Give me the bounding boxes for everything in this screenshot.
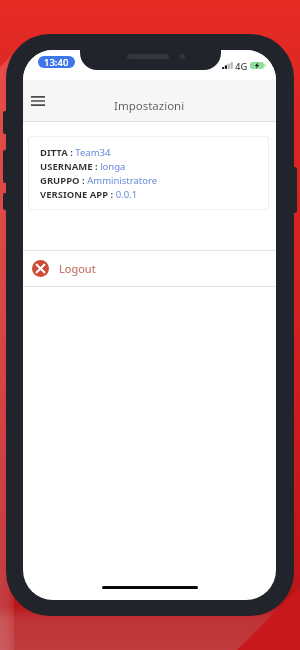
button[interactable]: Logout bbox=[23, 251, 276, 286]
staticText: Logout bbox=[59, 261, 96, 276]
staticText: 4G bbox=[235, 60, 248, 73]
staticText: Impostazioni bbox=[114, 98, 185, 114]
button[interactable]: Menu bbox=[24, 89, 52, 113]
staticText: 13:40 bbox=[44, 56, 69, 68]
staticText: USERNAME : longa bbox=[40, 160, 126, 173]
staticText: GRUPPO : Amministratore bbox=[40, 174, 158, 187]
staticText: VERSIONE APP : 0.0.1 bbox=[40, 188, 138, 201]
staticText: DITTA : Team34 bbox=[40, 146, 111, 159]
